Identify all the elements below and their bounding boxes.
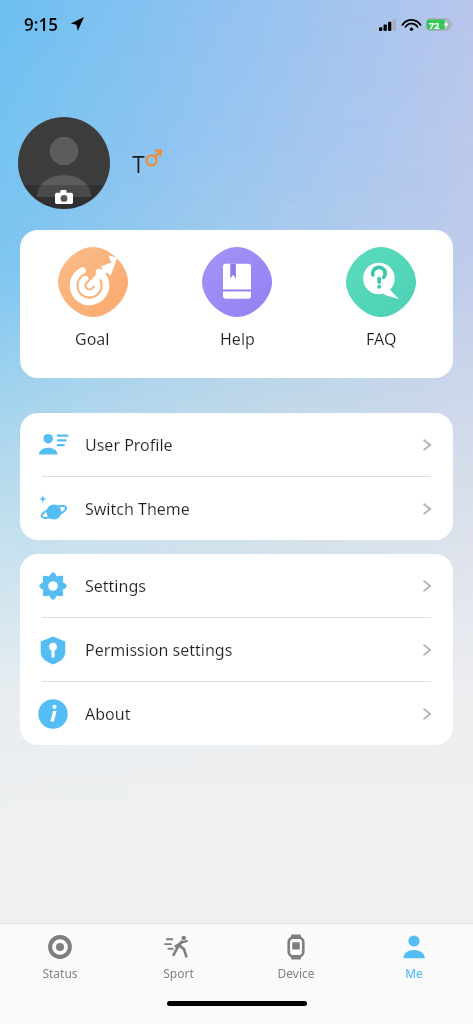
staticText: Permission settings	[85, 639, 417, 661]
button[interactable]: Device	[237, 924, 355, 990]
button[interactable]: Help	[165, 247, 309, 350]
staticText: Device	[277, 965, 315, 981]
staticText: Me	[405, 965, 423, 981]
staticText: Settings	[85, 575, 417, 597]
staticText: FAQ	[366, 328, 397, 350]
button[interactable]: Permission settings	[20, 618, 453, 682]
button[interactable]: About	[20, 682, 453, 745]
button[interactable]: Switch Theme	[20, 477, 453, 540]
staticText: 9:15	[24, 13, 58, 36]
staticText: Status	[42, 965, 78, 981]
button[interactable]: Settings	[20, 554, 453, 618]
button[interactable]: User Profile	[20, 413, 453, 477]
staticText: About	[85, 703, 417, 725]
staticText: Sport	[163, 965, 194, 981]
staticText: T	[132, 148, 145, 179]
staticText: Help	[220, 328, 255, 350]
button[interactable]: FAQ	[309, 247, 453, 350]
button[interactable]: Sport	[119, 924, 237, 990]
button[interactable]: Status	[0, 924, 119, 990]
staticText: Switch Theme	[85, 498, 417, 520]
staticText: Goal	[75, 328, 110, 350]
button[interactable]: Goal	[20, 247, 165, 350]
button[interactable]: Me	[355, 924, 473, 990]
staticText: 72	[429, 19, 440, 31]
button[interactable]: Change profile photo	[18, 117, 110, 209]
staticText: User Profile	[85, 434, 417, 456]
